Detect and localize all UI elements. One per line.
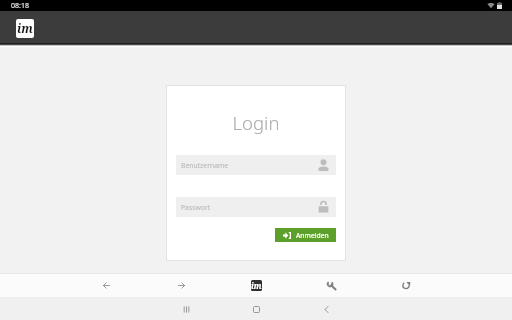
staticText: Passwort (181, 203, 211, 212)
button[interactable]: Passwort (176, 197, 336, 217)
button[interactable]: Home (221, 298, 291, 320)
button[interactable]: Settings (294, 273, 369, 298)
button[interactable]: App logo (16, 19, 34, 38)
button[interactable]: Anmelden (275, 228, 336, 242)
staticText: Benutzername (181, 161, 229, 170)
button[interactable]: Back (69, 273, 144, 298)
staticText: im (17, 20, 33, 36)
staticText: Login (176, 110, 336, 135)
button[interactable]: Back (291, 298, 361, 320)
staticText: Anmelden (296, 231, 329, 240)
button[interactable]: Forward (144, 273, 219, 298)
button[interactable]: Benutzername (176, 155, 336, 175)
staticText: im (251, 280, 262, 291)
button[interactable]: Recents (151, 298, 221, 320)
staticText: 08:18 (11, 1, 29, 11)
button[interactable]: Home page (251, 280, 262, 291)
button[interactable]: Refresh (369, 273, 444, 298)
